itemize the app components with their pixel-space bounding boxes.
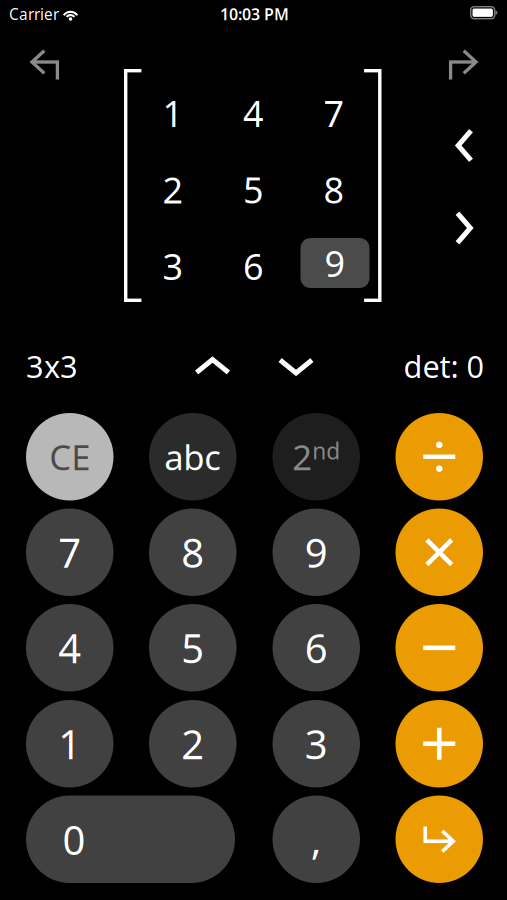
staticText: 8 — [323, 165, 344, 214]
staticText: 1 — [162, 88, 183, 137]
staticText: 4 — [58, 620, 81, 675]
staticText: 5 — [181, 620, 204, 675]
staticText: Carrier — [9, 4, 59, 24]
staticText: 4 — [243, 88, 264, 137]
staticText: nd — [312, 435, 340, 466]
button[interactable]: Previous matrix — [0, 0, 507, 900]
button[interactable]: CE — [0, 0, 507, 900]
button[interactable]: Increase size — [0, 0, 507, 900]
button[interactable]: 7 — [0, 0, 507, 900]
staticText: 5 — [243, 165, 264, 214]
button[interactable]: 4 — [0, 0, 507, 900]
button[interactable]: 6 — [0, 0, 507, 900]
staticText: 0 — [62, 812, 85, 867]
button[interactable]: 5 — [0, 0, 507, 900]
button[interactable]: 8 — [0, 0, 507, 900]
button[interactable]: 6 — [0, 0, 507, 900]
button[interactable] — [0, 0, 507, 900]
staticText: 1 — [58, 716, 81, 771]
button[interactable]: Decrease size — [0, 0, 507, 900]
button[interactable]: 2 — [0, 0, 507, 900]
button[interactable]: Redo — [0, 0, 507, 900]
staticText: 9 — [324, 238, 345, 287]
button[interactable] — [0, 0, 507, 900]
button[interactable]: Next matrix — [0, 0, 507, 900]
button[interactable]: 5 — [0, 0, 507, 900]
button[interactable]: 2 — [0, 0, 507, 900]
button[interactable]: 4 — [0, 0, 507, 900]
staticText: 8 — [181, 525, 204, 579]
button[interactable]: 0 — [0, 0, 507, 900]
staticText: 3 — [305, 716, 328, 771]
button[interactable] — [0, 0, 507, 900]
button[interactable]: 1 — [0, 0, 507, 900]
button[interactable] — [0, 0, 507, 900]
staticText: 9 — [305, 525, 328, 579]
button[interactable]: 3 — [0, 0, 507, 900]
staticText: 6 — [305, 620, 328, 675]
staticText: abc — [164, 433, 221, 480]
button[interactable]: abc — [0, 0, 507, 900]
button[interactable]: 7 — [0, 0, 507, 900]
staticText: 7 — [323, 88, 344, 137]
staticText: 10:03 PM — [220, 3, 289, 25]
button[interactable]: 1 — [0, 0, 507, 900]
button[interactable]: Undo — [0, 0, 507, 900]
button[interactable]: 8 — [0, 0, 507, 900]
staticText: 3x3 — [26, 345, 78, 387]
staticText: 6 — [243, 241, 264, 290]
staticText: 2 — [181, 716, 204, 771]
button[interactable] — [0, 0, 507, 900]
button[interactable]: 2 — [0, 0, 507, 900]
staticText: 2 — [162, 165, 183, 214]
staticText: CE — [49, 433, 90, 480]
staticText: 7 — [58, 525, 81, 579]
staticText: det: 0 — [403, 345, 484, 387]
staticText: 3 — [162, 241, 183, 290]
button[interactable]: 9 — [0, 0, 507, 900]
button[interactable]: , — [0, 0, 507, 900]
staticText: , — [311, 812, 322, 866]
button[interactable]: 3 — [0, 0, 507, 900]
button[interactable]: 9 — [0, 0, 507, 900]
staticText: 2 — [292, 433, 312, 480]
button[interactable]: 3x3 — [0, 0, 507, 900]
